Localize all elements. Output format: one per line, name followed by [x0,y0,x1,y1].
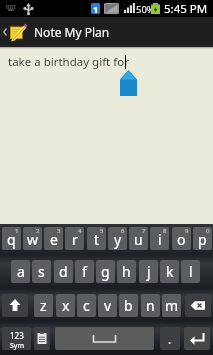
staticText: 5:45 PM [164,1,208,17]
staticText: x [62,296,70,315]
button[interactable]: 4 [65,227,84,250]
staticText: q [7,230,16,249]
button[interactable]: v [98,294,117,317]
button[interactable]: f [75,260,94,283]
staticText: 1 [15,227,19,235]
staticText: t [94,230,100,249]
button[interactable]: 8 [150,227,169,250]
button[interactable]: 6 [108,227,127,250]
staticText: r [72,230,78,249]
staticText: c [83,296,90,315]
staticText: 2 [36,227,40,235]
button[interactable]: x [56,294,75,317]
staticText: i [158,230,162,249]
button[interactable]: j [139,260,158,283]
button[interactable]: 0 [193,227,212,250]
button[interactable]: a [11,260,30,283]
button[interactable]: Shift [2,294,28,317]
staticText: e [50,230,58,249]
button[interactable]: s [32,260,51,283]
other: Text cursor handle [120,70,137,96]
button[interactable]: h [117,260,136,283]
staticText: 7 [142,227,146,235]
staticText: v [104,296,112,315]
button[interactable]: 5 [87,227,106,250]
staticText: 50% [136,3,155,16]
other: Back [3,28,7,36]
staticText: 3 [57,227,61,235]
button[interactable]: . [160,327,180,350]
staticText: Sym [10,341,24,350]
staticText: g [101,262,110,281]
button[interactable]: l [181,260,200,283]
button[interactable]: 7 [129,227,148,250]
staticText: m [165,296,179,315]
staticText: w [27,230,39,249]
staticText: n [146,296,155,315]
staticText: d [59,262,68,281]
staticText: 123 [10,330,24,341]
button[interactable]: m [162,294,181,317]
staticText: j [147,262,151,281]
button[interactable]: Enter [184,327,210,350]
button[interactable]: z [34,294,53,317]
button[interactable]: d [54,260,73,283]
staticText: s [38,262,45,281]
button[interactable]: 2 [23,227,42,250]
staticText: a [17,262,25,281]
staticText: o [177,230,186,249]
button[interactable]: n [141,294,160,317]
staticText: p [198,230,207,249]
staticText: h [122,262,131,281]
button[interactable]: Back [0,17,213,47]
staticText: 0 [206,227,210,235]
staticText: 9 [185,227,189,235]
staticText: 5 [100,227,104,235]
staticText: 1 [93,3,99,14]
staticText: u [134,230,143,249]
staticText: Note My Plan [34,24,110,40]
staticText: 6 [121,227,125,235]
button[interactable]: b [119,294,138,317]
staticText: z [40,296,47,315]
button[interactable]: c [77,294,96,317]
button[interactable]: 1 [2,227,21,250]
staticText: y [114,230,122,249]
button[interactable]: g [96,260,115,283]
button[interactable]: Backspace [185,294,211,317]
staticText: 4 [78,227,82,235]
staticText: k [166,262,174,281]
staticText: f [82,262,87,281]
staticText: take a birthday gift for [8,54,129,70]
staticText: 8 [163,227,167,235]
staticText: l [189,262,193,281]
button[interactable]: Symbols [2,327,31,350]
button[interactable]: 3 [44,227,63,250]
button[interactable]: Space [55,327,154,350]
staticText: b [124,296,133,315]
staticText: . [168,331,172,347]
button[interactable]: k [160,260,179,283]
button[interactable]: Clipboard [34,327,50,350]
button[interactable]: 9 [172,227,191,250]
